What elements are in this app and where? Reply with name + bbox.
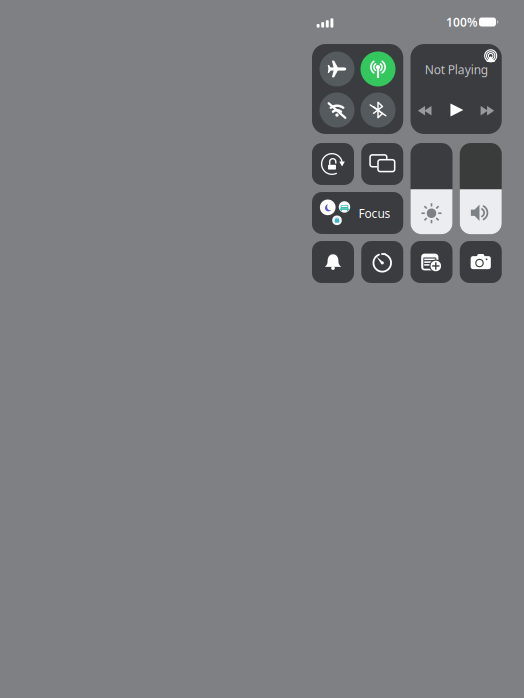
button[interactable]: Camera [460, 241, 502, 283]
staticText: Focus [358, 205, 390, 221]
button[interactable]: Rotation Lock [312, 143, 354, 185]
button[interactable]: Timer [361, 241, 403, 283]
staticText: Not Playing [425, 61, 488, 77]
button[interactable]: Rewind [413, 99, 437, 121]
staticText: 100% [446, 14, 478, 30]
button[interactable]: Play [445, 99, 469, 121]
button[interactable]: Brightness [410, 143, 452, 234]
button[interactable]: Cellular Data [360, 51, 395, 86]
button[interactable]: Focus [312, 192, 403, 234]
button[interactable]: AirPlay [482, 47, 500, 65]
button[interactable]: Silent Mode [312, 241, 354, 283]
button[interactable]: Fast Forward [475, 99, 499, 121]
button[interactable]: Wi-Fi [319, 92, 354, 127]
button[interactable]: Bluetooth [360, 92, 395, 127]
button[interactable]: Volume [460, 143, 502, 234]
button[interactable]: Screen Mirroring [361, 143, 403, 185]
button[interactable]: New Note [410, 241, 452, 283]
button[interactable]: Airplane Mode [319, 51, 354, 86]
